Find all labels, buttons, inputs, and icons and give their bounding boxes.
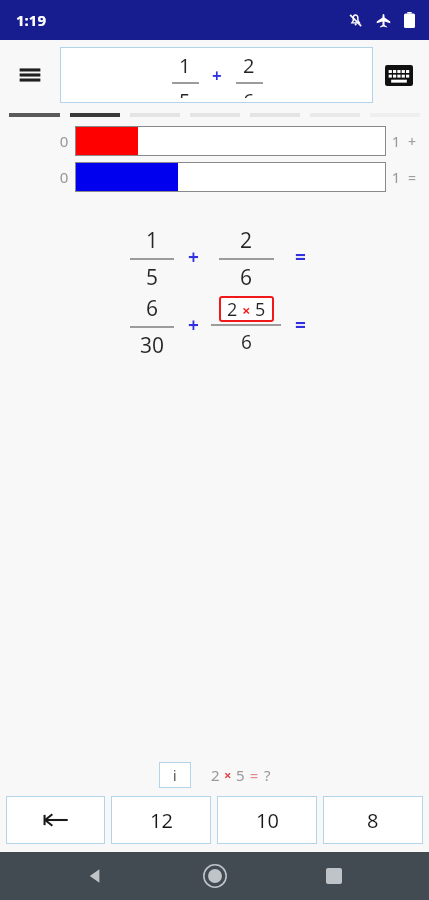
staticText: + — [188, 312, 199, 338]
button[interactable]: Back — [71, 852, 119, 900]
button[interactable]: 10 — [217, 796, 317, 844]
staticText: 1 — [390, 131, 402, 151]
staticText: ? — [264, 765, 271, 785]
staticText: 6 — [146, 294, 159, 323]
staticText: 2 — [240, 226, 253, 255]
staticText: 10 — [256, 807, 279, 834]
staticText: = — [295, 312, 306, 338]
staticText: 2 — [211, 765, 220, 785]
button[interactable]: Keyboard — [377, 53, 421, 97]
staticText: + — [188, 244, 199, 270]
button[interactable] — [75, 126, 386, 156]
staticText: + — [405, 132, 419, 151]
staticText: 6 — [241, 329, 252, 355]
staticText: = — [250, 766, 259, 785]
staticText: 5 — [179, 87, 191, 98]
staticText: 5 — [255, 297, 266, 322]
staticText: 0 — [56, 167, 72, 187]
staticText: + — [212, 64, 222, 87]
staticText: 1:19 — [16, 10, 46, 30]
staticText: 6 — [240, 263, 253, 288]
button[interactable]: Backspace — [6, 796, 105, 844]
button[interactable]: Info — [159, 762, 191, 788]
button[interactable]: Menu — [8, 53, 52, 97]
staticText: 5 — [236, 765, 245, 785]
staticText: 5 — [146, 263, 159, 288]
button[interactable] — [75, 162, 386, 192]
staticText: 2 — [243, 52, 255, 79]
button[interactable]: 2 — [227, 296, 266, 322]
staticText: i — [173, 766, 177, 785]
staticText: 30 — [140, 331, 165, 356]
staticText: 2 — [227, 297, 238, 322]
staticText: 1 — [146, 226, 159, 255]
button[interactable]: 12 — [111, 796, 211, 844]
button[interactable]: Home — [191, 852, 239, 900]
staticText: = — [405, 168, 419, 187]
staticText: 12 — [150, 807, 173, 834]
staticText: × — [224, 766, 232, 784]
button[interactable]: Recent apps — [310, 852, 358, 900]
staticText: 8 — [367, 807, 379, 834]
button[interactable]: 8 — [323, 796, 423, 844]
staticText: × — [242, 300, 251, 320]
staticText: = — [295, 244, 306, 270]
staticText: 6 — [243, 87, 255, 98]
staticText: 1 — [179, 52, 191, 79]
staticText: 0 — [56, 131, 72, 151]
button[interactable]: 1 — [60, 47, 373, 103]
staticText: 1 — [390, 167, 402, 187]
